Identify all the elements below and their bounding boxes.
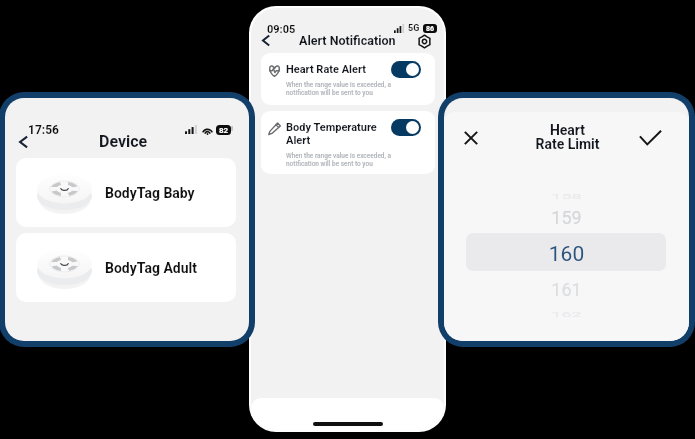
staticText: When the range value is exceeded, a noti…: [286, 81, 392, 97]
staticText: 86: [426, 25, 435, 33]
button[interactable]: Confirm: [639, 130, 662, 145]
staticText: 09:05: [267, 23, 296, 36]
button[interactable]: BodyTag Adult: [16, 233, 236, 302]
staticText: 161: [444, 279, 689, 300]
button[interactable]: [391, 119, 421, 136]
staticText: When the range value is exceeded, a noti…: [286, 152, 392, 168]
staticText: 159: [444, 207, 689, 228]
staticText: 82: [219, 126, 229, 135]
staticText: BodyTag Baby: [105, 185, 195, 201]
button[interactable]: Body Temperature Alert: [261, 111, 435, 174]
staticText: 17:56: [28, 123, 59, 137]
staticText: 160: [444, 242, 689, 267]
button[interactable]: Back: [19, 136, 28, 148]
staticText: Heart Rate Limit: [445, 122, 689, 152]
button[interactable]: Heart Rate Alert: [261, 53, 435, 105]
button[interactable]: [466, 233, 666, 271]
button[interactable]: [391, 61, 421, 78]
staticText: Device: [99, 132, 148, 151]
button[interactable]: Cancel: [464, 131, 478, 145]
staticText: Body Temperature Alert: [286, 121, 386, 146]
button[interactable]: Settings: [417, 34, 432, 49]
staticText: BodyTag Adult: [105, 260, 197, 276]
staticText: 5G: [408, 23, 420, 34]
staticText: Alert Notification: [299, 33, 396, 48]
staticText: Heart Rate Alert: [286, 63, 386, 76]
button[interactable]: Back: [262, 35, 270, 46]
button[interactable]: BodyTag Baby: [16, 158, 236, 227]
